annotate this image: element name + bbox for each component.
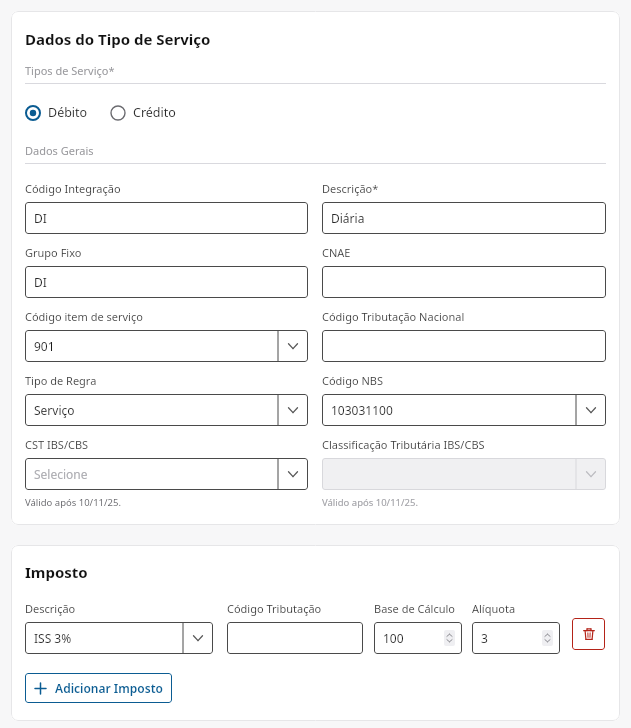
staticText: Tipo de Regra	[25, 373, 97, 388]
button[interactable]: 103031100	[322, 394, 606, 426]
staticText: 3	[481, 630, 488, 646]
staticText: Classificação Tributária IBS/CBS	[322, 437, 485, 452]
staticText: 100	[383, 630, 404, 646]
staticText: Código Tributação	[227, 601, 322, 616]
button[interactable]: 901	[25, 330, 308, 362]
staticText: DI	[34, 274, 47, 290]
button[interactable]: 100	[374, 622, 462, 654]
button[interactable]	[322, 330, 606, 362]
button[interactable]: Selecione	[25, 458, 308, 490]
staticText: Serviço	[34, 402, 75, 418]
staticText: 103031100	[331, 402, 393, 418]
button[interactable]: Crédito	[110, 104, 176, 121]
staticText: Código Tributação Nacional	[322, 309, 465, 324]
staticText: Código Integração	[25, 181, 121, 196]
staticText: Imposto	[25, 562, 88, 582]
staticText: DI	[34, 210, 47, 226]
staticText: 901	[34, 338, 55, 354]
staticText: Grupo Fixo	[25, 245, 82, 260]
staticText: Adicionar Imposto	[55, 680, 163, 696]
button[interactable]: Excluir imposto	[572, 618, 605, 650]
staticText: Código item de serviço	[25, 309, 143, 324]
button[interactable]: 3	[472, 622, 560, 654]
button[interactable]	[322, 266, 606, 298]
staticText: CST IBS/CBS	[25, 437, 89, 452]
button[interactable]: DI	[25, 202, 308, 234]
staticText: Válido após 10/11/25.	[322, 496, 418, 509]
staticText: Código NBS	[322, 373, 384, 388]
staticText: Descrição*	[322, 181, 379, 196]
button[interactable]: Débito	[25, 104, 88, 121]
staticText: Válido após 10/11/25.	[25, 496, 121, 509]
button[interactable]	[227, 622, 363, 654]
button[interactable]: ISS 3%	[25, 622, 213, 654]
staticText: Alíquota	[472, 601, 516, 616]
staticText: ISS 3%	[34, 630, 72, 646]
staticText: Diária	[331, 210, 365, 226]
staticText: Descrição	[25, 601, 76, 616]
button[interactable]: Serviço	[25, 394, 308, 426]
staticText: CNAE	[322, 245, 351, 260]
staticText: Tipos de Serviço*	[25, 63, 115, 78]
staticText: Débito	[48, 104, 88, 121]
button[interactable]: Incrementar ou decrementar	[444, 630, 455, 646]
button[interactable]: DI	[25, 266, 308, 298]
staticText: Dados Gerais	[25, 143, 94, 158]
staticText: Selecione	[34, 466, 88, 482]
staticText: Dados do Tipo de Serviço	[25, 29, 211, 49]
button[interactable]: Incrementar ou decrementar	[542, 630, 553, 646]
staticText: Base de Cálculo	[374, 601, 456, 616]
staticText: Crédito	[133, 104, 176, 121]
button[interactable]: Diária	[322, 202, 606, 234]
button[interactable]: Adicionar Imposto	[25, 673, 172, 703]
button[interactable]	[322, 458, 606, 490]
